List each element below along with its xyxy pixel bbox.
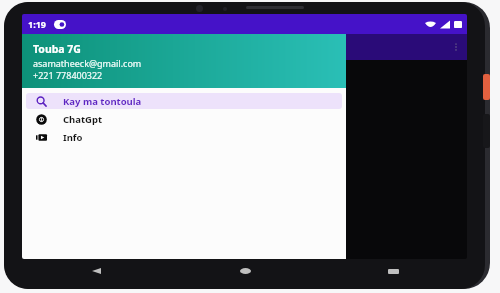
button[interactable]: Recent apps — [319, 259, 467, 283]
button[interactable]: Info — [26, 129, 342, 145]
staticText: ChatGpt — [63, 113, 103, 126]
button[interactable]: Home — [171, 259, 319, 283]
staticText: Info — [63, 131, 83, 144]
button[interactable]: More options — [445, 36, 467, 58]
staticText: 1:19 — [28, 18, 46, 30]
staticText: +221 778400322 — [33, 69, 103, 81]
button[interactable]: ChatGpt — [26, 111, 342, 127]
staticText: asamatheeck@gmail.com — [33, 57, 142, 69]
staticText: Touba 7G — [33, 42, 81, 56]
staticText: Kay ma tontoula — [63, 95, 142, 108]
button[interactable]: Kay ma tontoula — [26, 93, 342, 109]
button[interactable]: Back — [22, 259, 171, 283]
